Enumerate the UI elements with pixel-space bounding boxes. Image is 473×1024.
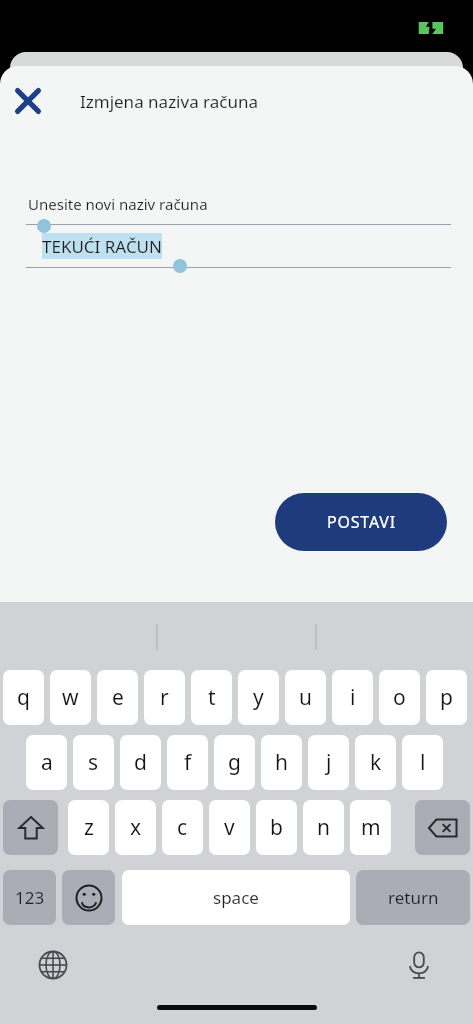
staticText: w — [62, 683, 79, 712]
staticText: p — [440, 683, 453, 712]
button[interactable]: Shift — [3, 800, 58, 855]
staticText: x — [130, 813, 142, 842]
staticText: r — [160, 683, 169, 712]
button[interactable]: x — [115, 800, 156, 855]
button[interactable]: i — [332, 670, 373, 725]
staticText: a — [41, 748, 53, 777]
button[interactable]: Voice input — [398, 944, 440, 986]
button[interactable]: 123 — [3, 870, 56, 925]
button[interactable]: q — [3, 670, 44, 725]
staticText: space — [213, 886, 259, 909]
button[interactable]: e — [97, 670, 138, 725]
staticText: l — [420, 748, 426, 777]
staticText: m — [361, 813, 381, 842]
staticText: Unesite novi naziv računa — [28, 194, 208, 214]
staticText: j — [326, 748, 332, 777]
button[interactable]: Change keyboard language — [32, 944, 74, 986]
button[interactable]: Close — [6, 79, 50, 123]
button[interactable]: g — [214, 735, 255, 790]
button[interactable]: space — [122, 870, 350, 925]
button[interactable]: o — [379, 670, 420, 725]
button[interactable]: n — [303, 800, 344, 855]
button[interactable]: return — [356, 870, 470, 925]
button[interactable]: u — [285, 670, 326, 725]
button[interactable]: h — [261, 735, 302, 790]
staticText: i — [350, 683, 356, 712]
button[interactable]: b — [256, 800, 297, 855]
button[interactable]: s — [73, 735, 114, 790]
button[interactable]: w — [50, 670, 91, 725]
button[interactable]: c — [162, 800, 203, 855]
staticText: POSTAVI — [327, 511, 396, 533]
button[interactable]: k — [355, 735, 396, 790]
staticText: n — [317, 813, 330, 842]
button[interactable]: r — [144, 670, 185, 725]
staticText: o — [393, 683, 406, 712]
staticText: return — [388, 886, 439, 909]
button[interactable]: j — [308, 735, 349, 790]
staticText: h — [275, 748, 288, 777]
button[interactable]: v — [209, 800, 250, 855]
button[interactable]: a — [26, 735, 67, 790]
staticText: v — [224, 813, 235, 842]
staticText: k — [370, 748, 382, 777]
staticText: b — [270, 813, 283, 842]
button[interactable]: p — [426, 670, 467, 725]
staticText: s — [88, 748, 99, 777]
staticText: t — [208, 683, 216, 712]
button[interactable]: Emoji — [62, 870, 115, 925]
staticText: q — [17, 683, 30, 712]
staticText: c — [177, 813, 188, 842]
button[interactable]: Backspace — [415, 800, 470, 855]
staticText: u — [299, 683, 312, 712]
staticText: f — [184, 748, 192, 777]
button[interactable]: m — [350, 800, 391, 855]
button[interactable]: f — [167, 735, 208, 790]
button[interactable]: POSTAVI — [275, 493, 447, 551]
button[interactable]: z — [68, 800, 109, 855]
staticText: g — [228, 748, 241, 777]
staticText: 123 — [15, 886, 45, 909]
staticText: d — [134, 748, 147, 777]
staticText: TEKUĆI RAČUN — [42, 235, 162, 258]
staticText: Izmjena naziva računa — [80, 90, 259, 113]
button[interactable]: d — [120, 735, 161, 790]
staticText: e — [112, 683, 124, 712]
other: Battery charging — [418, 20, 454, 36]
button[interactable]: TEKUĆI RAČUN — [42, 233, 162, 259]
staticText: z — [84, 813, 94, 842]
staticText: y — [253, 683, 264, 712]
button[interactable]: l — [402, 735, 443, 790]
button[interactable]: y — [238, 670, 279, 725]
button[interactable]: t — [191, 670, 232, 725]
